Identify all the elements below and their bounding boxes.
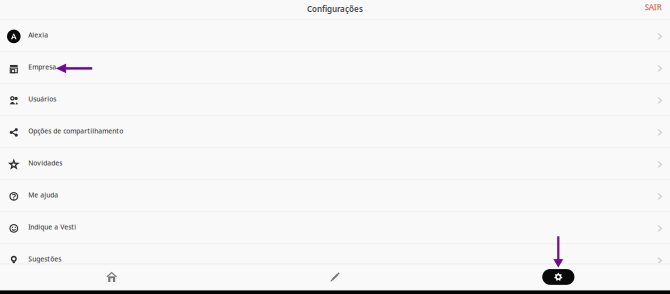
staticText: SAIR [645, 2, 662, 12]
staticText: Sugestões [28, 254, 61, 263]
staticText: Configurações [307, 4, 363, 14]
staticText: Opções de compartilhamento [28, 126, 123, 135]
staticText: ? [12, 190, 16, 203]
staticText: Me ajuda [28, 190, 58, 199]
button[interactable]: Sugestões [0, 244, 670, 276]
button[interactable]: Alexia [0, 20, 670, 52]
button[interactable]: Início [0, 263, 223, 290]
button[interactable]: Usuários [0, 84, 670, 116]
staticText: Alexia [28, 30, 48, 39]
staticText: Novidades [28, 158, 62, 167]
staticText: Indique a Vesti [28, 222, 76, 231]
button[interactable]: Configurações [447, 263, 670, 290]
button[interactable]: ? [0, 180, 670, 212]
button[interactable]: Empresa [0, 52, 670, 84]
button[interactable]: Indique a Vesti [0, 212, 670, 244]
button[interactable]: Opções de compartilhamento [0, 116, 670, 148]
button[interactable]: SAIR [645, 1, 670, 19]
button[interactable]: Novidades [0, 148, 670, 180]
button[interactable]: Criar [223, 263, 447, 290]
staticText: Empresa [28, 62, 56, 71]
staticText: Usuários [28, 94, 56, 103]
